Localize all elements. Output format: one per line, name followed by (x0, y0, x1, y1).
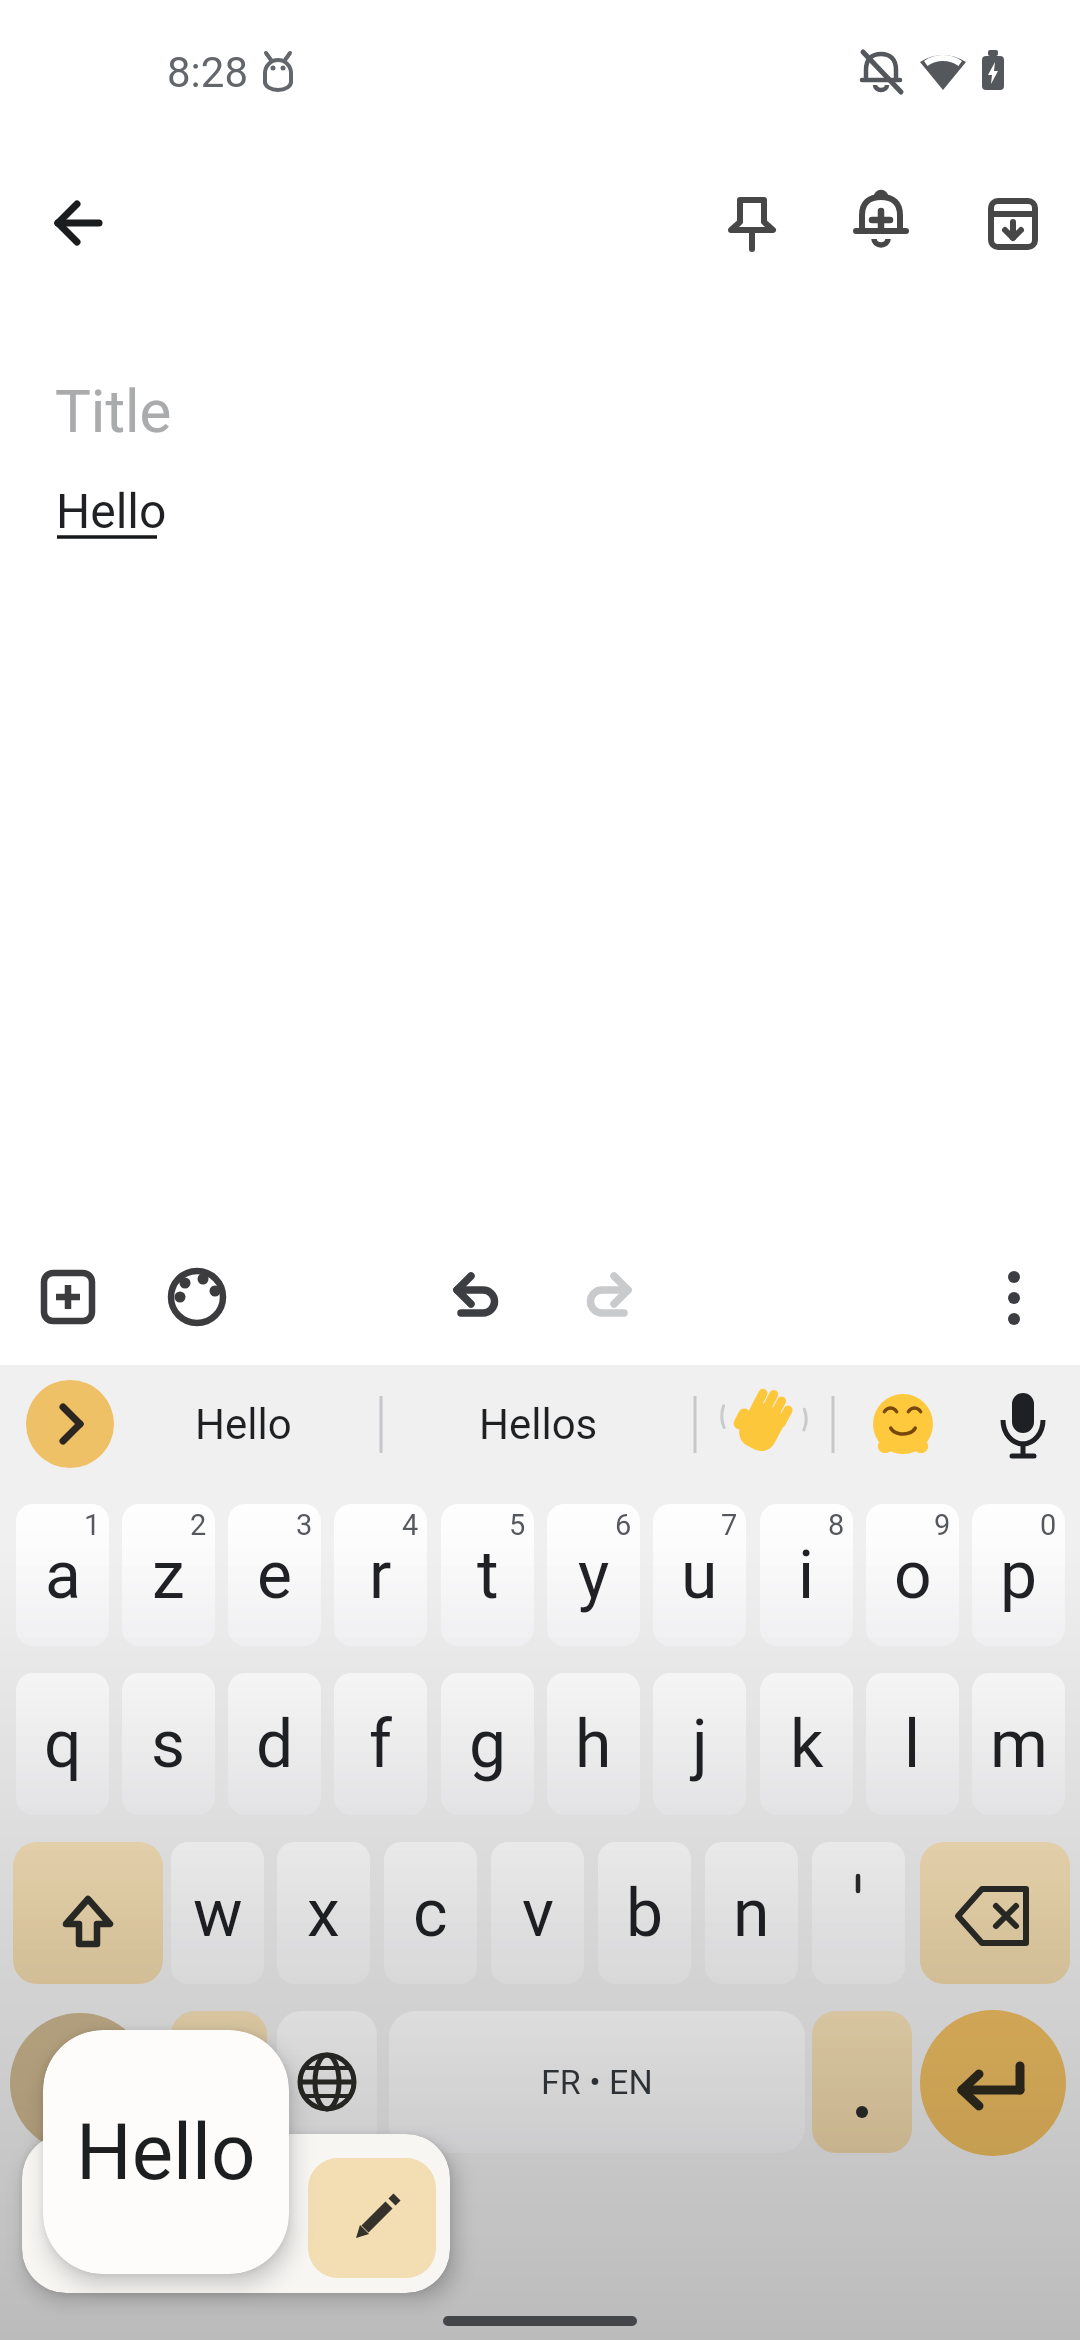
button[interactable] (982, 1265, 1046, 1329)
button[interactable]: u (653, 1504, 746, 1646)
staticText: d (256, 1706, 294, 1783)
staticText: h (575, 1706, 612, 1783)
staticText: w (193, 1875, 243, 1952)
staticText: i (798, 1537, 815, 1614)
button[interactable] (920, 2010, 1066, 2156)
staticText: t (477, 1537, 499, 1614)
button[interactable]: j (653, 1673, 746, 1815)
staticText: Hello (195, 1400, 292, 1449)
button[interactable] (45, 191, 109, 255)
button[interactable] (920, 1842, 1070, 1984)
button[interactable]: y (547, 1504, 640, 1646)
staticText: Hello (56, 483, 167, 539)
staticText: v (522, 1875, 554, 1952)
staticText: 4 (402, 1508, 419, 1542)
staticText: u (681, 1537, 718, 1614)
staticText: e (257, 1537, 292, 1614)
button[interactable] (849, 191, 913, 255)
staticText: a (45, 1537, 81, 1614)
button[interactable]: z (122, 1504, 215, 1646)
button[interactable]: h (547, 1673, 640, 1815)
button[interactable] (446, 1265, 510, 1329)
button[interactable]: c (384, 1842, 477, 1984)
button[interactable]: n (705, 1842, 798, 1984)
button[interactable] (165, 1265, 229, 1329)
staticText: 8 (828, 1508, 845, 1542)
button[interactable] (865, 1386, 941, 1462)
staticText: z (152, 1537, 185, 1614)
staticText: 9 (934, 1508, 951, 1542)
staticText: j (692, 1706, 708, 1783)
button[interactable]: b (598, 1842, 691, 1984)
button[interactable] (10, 2013, 150, 2153)
button[interactable] (985, 1380, 1061, 1468)
button[interactable]: Hello (43, 2030, 289, 2274)
button[interactable]: o (866, 1504, 959, 1646)
staticText: q (44, 1706, 82, 1783)
staticText: y (578, 1537, 610, 1614)
staticText: 5 (509, 1508, 526, 1542)
staticText: k (790, 1706, 824, 1783)
button[interactable]: r (334, 1504, 427, 1646)
staticText: 0 (1040, 1508, 1057, 1542)
staticText: l (904, 1706, 921, 1783)
staticText: n (733, 1875, 770, 1952)
staticText: 2 (190, 1508, 207, 1542)
button[interactable]: s (122, 1673, 215, 1815)
button[interactable] (720, 191, 784, 255)
button[interactable]: Hello (150, 1380, 336, 1468)
staticText: r (369, 1537, 392, 1614)
button[interactable] (36, 1265, 100, 1329)
staticText: b (626, 1875, 664, 1952)
button[interactable] (812, 2011, 912, 2153)
button[interactable]: x (277, 1842, 370, 1984)
button[interactable] (308, 2158, 436, 2278)
staticText: 1 (84, 1508, 101, 1542)
staticText: Hello (76, 2107, 256, 2198)
staticText: c (413, 1875, 448, 1952)
button[interactable]: Hellos (445, 1380, 631, 1468)
button[interactable] (171, 2011, 267, 2153)
staticText: 7 (721, 1508, 738, 1542)
staticText: g (469, 1706, 507, 1783)
button[interactable]: w (171, 1842, 264, 1984)
button[interactable] (812, 1842, 905, 1984)
button[interactable]: v (491, 1842, 584, 1984)
staticText: p (1000, 1537, 1038, 1614)
button[interactable] (725, 1386, 801, 1462)
button[interactable]: t (441, 1504, 534, 1646)
button[interactable]: a (16, 1504, 109, 1646)
staticText: f (369, 1706, 392, 1783)
staticText: 6 (615, 1508, 632, 1542)
staticText: Hellos (479, 1400, 598, 1449)
button[interactable]: d (228, 1673, 321, 1815)
staticText: x (307, 1875, 340, 1952)
button[interactable]: FR • EN (389, 2011, 805, 2153)
staticText: Title (55, 376, 172, 446)
staticText: 8:28 (167, 48, 248, 97)
staticText: s (151, 1706, 186, 1783)
button[interactable]: m (972, 1673, 1065, 1815)
button[interactable]: l (866, 1673, 959, 1815)
button[interactable] (13, 1842, 163, 1984)
button[interactable] (981, 191, 1045, 255)
staticText: o (894, 1537, 932, 1614)
button[interactable]: k (760, 1673, 853, 1815)
button[interactable] (26, 1380, 114, 1468)
button[interactable]: p (972, 1504, 1065, 1646)
staticText: FR • EN (541, 2062, 653, 2102)
button[interactable]: i (760, 1504, 853, 1646)
button[interactable]: f (334, 1673, 427, 1815)
button[interactable] (277, 2011, 377, 2153)
button[interactable]: g (441, 1673, 534, 1815)
staticText: 3 (296, 1508, 313, 1542)
button[interactable]: q (16, 1673, 109, 1815)
button[interactable]: e (228, 1504, 321, 1646)
button[interactable] (576, 1265, 640, 1329)
staticText: m (990, 1706, 1048, 1783)
